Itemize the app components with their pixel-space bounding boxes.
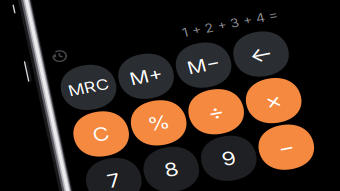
button[interactable]: MRC xyxy=(142,68,197,123)
staticText: MRC xyxy=(149,85,190,106)
staticText: % xyxy=(218,140,240,168)
staticText: M+ xyxy=(212,83,245,108)
staticText: C xyxy=(161,140,178,168)
button[interactable]: % xyxy=(201,127,256,182)
button[interactable]: M+ xyxy=(201,68,256,123)
button[interactable]: M− xyxy=(260,68,315,123)
button[interactable]: 7 xyxy=(142,185,197,191)
staticText: 1 + 2 + 3 + 4 = xyxy=(275,44,340,61)
button[interactable]: C xyxy=(142,127,197,182)
staticText: M− xyxy=(271,83,304,108)
staticText: ÷ xyxy=(279,139,296,169)
button[interactable]: ÷ xyxy=(260,127,315,182)
button[interactable]: History xyxy=(144,45,157,58)
